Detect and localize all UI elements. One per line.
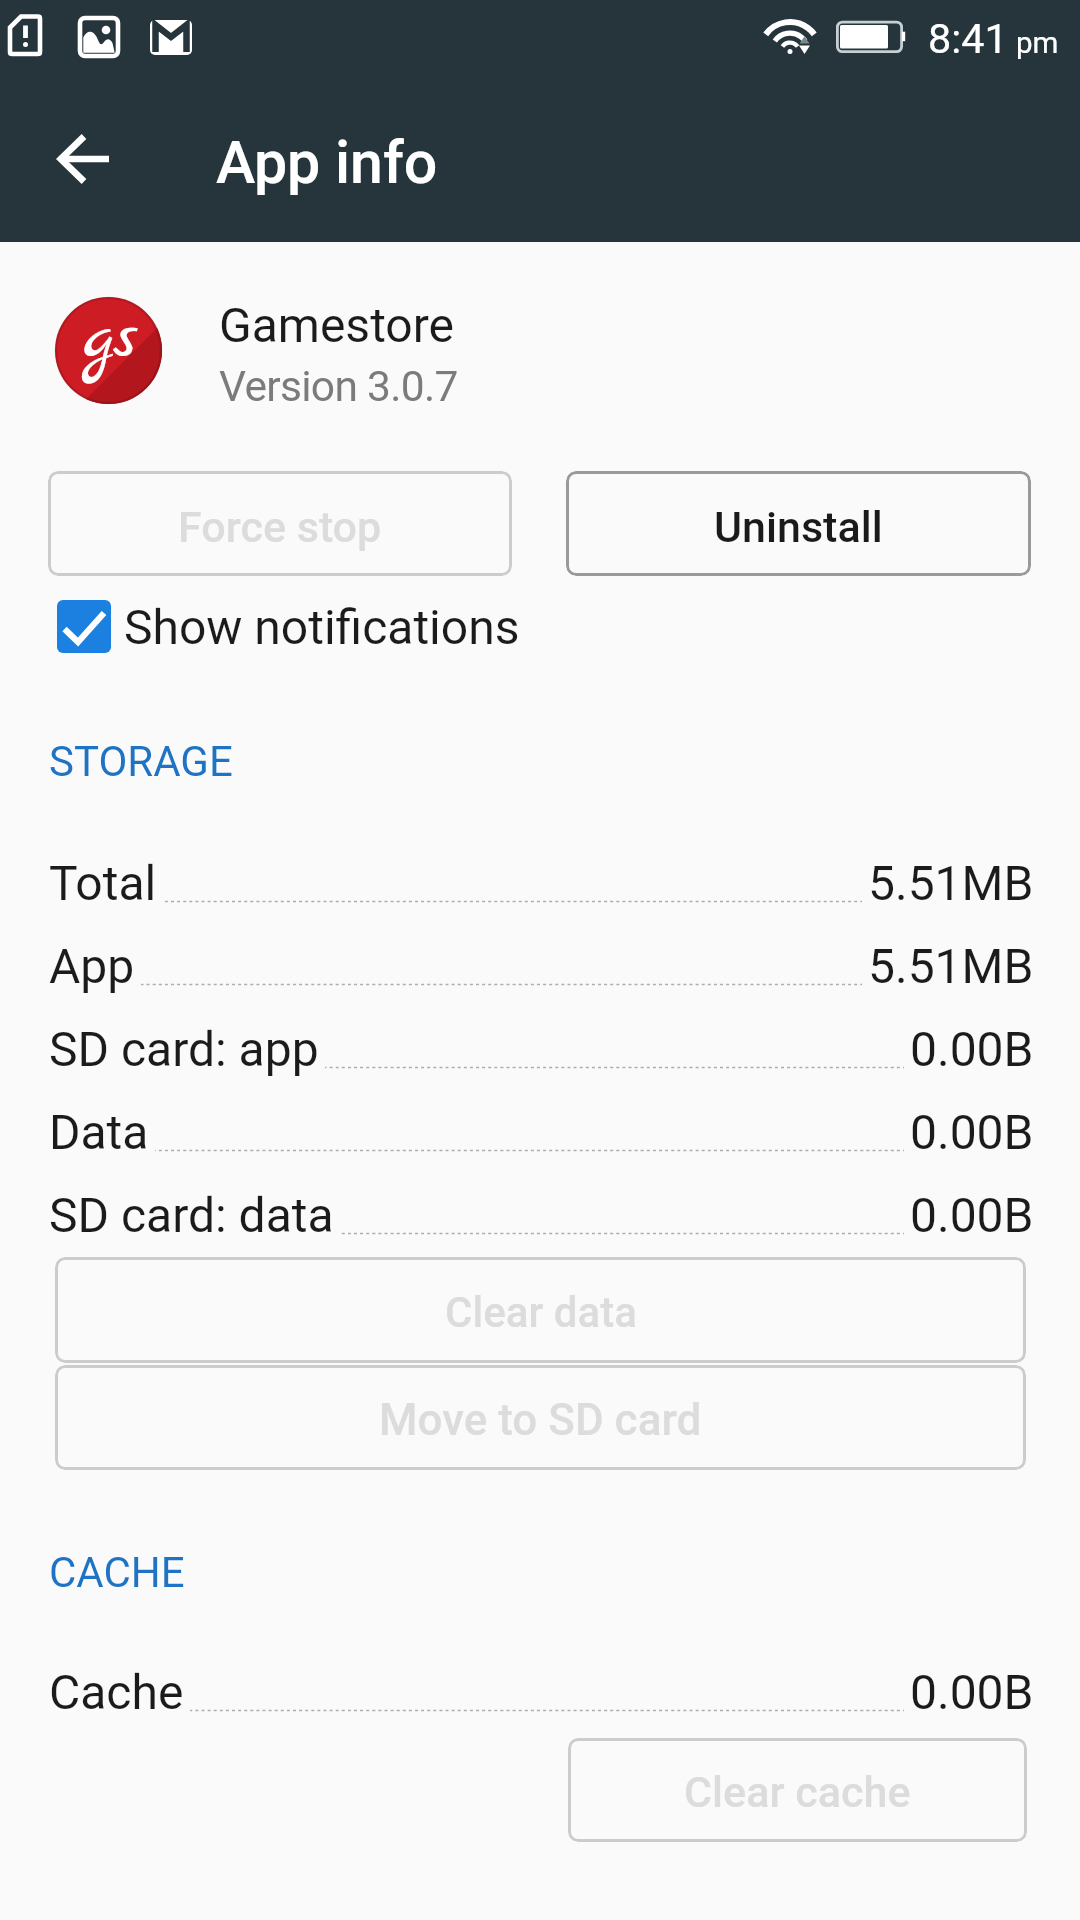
button[interactable]: Uninstall bbox=[566, 471, 1031, 576]
staticText: Uninstall bbox=[714, 502, 883, 552]
staticText: STORAGE bbox=[49, 737, 233, 786]
staticText: Move to SD card bbox=[379, 1394, 702, 1446]
staticText: Cache bbox=[49, 1664, 184, 1720]
button[interactable]: SD card: data bbox=[0, 1176, 1080, 1248]
button[interactable]: Move to SD card bbox=[55, 1365, 1026, 1470]
button[interactable]: Back bbox=[36, 111, 132, 207]
button[interactable]: Clear cache bbox=[568, 1738, 1027, 1842]
staticText: Total bbox=[49, 855, 157, 911]
staticText: Force stop bbox=[178, 502, 382, 552]
staticText: Clear cache bbox=[684, 1767, 911, 1817]
staticText: 0.00B bbox=[910, 1187, 1034, 1243]
button[interactable]: Data bbox=[0, 1093, 1080, 1165]
staticText: SD card: app bbox=[49, 1021, 319, 1077]
staticText: 0.00B bbox=[910, 1021, 1034, 1077]
staticText: 5.51MB bbox=[868, 855, 1034, 911]
staticText: Gamestore bbox=[219, 297, 455, 353]
staticText: Clear data bbox=[445, 1288, 637, 1337]
button[interactable]: SD card: app bbox=[0, 1010, 1080, 1082]
staticText: App info bbox=[216, 128, 438, 197]
button[interactable]: Total bbox=[0, 844, 1080, 916]
button[interactable]: Clear data bbox=[55, 1257, 1026, 1363]
staticText: 0.00B bbox=[910, 1104, 1034, 1160]
staticText: SD card: data bbox=[49, 1187, 334, 1243]
staticText: 0.00B bbox=[910, 1664, 1034, 1720]
staticText: gs bbox=[81, 294, 138, 384]
staticText: 8:41 bbox=[928, 15, 1008, 64]
staticText: 5.51MB bbox=[868, 938, 1034, 994]
button[interactable]: App bbox=[0, 927, 1080, 999]
staticText: CACHE bbox=[49, 1548, 185, 1597]
staticText: App bbox=[49, 938, 135, 994]
staticText: Data bbox=[49, 1104, 149, 1160]
staticText: pm bbox=[1016, 26, 1059, 61]
button[interactable]: Show notifications bbox=[57, 596, 520, 658]
button[interactable]: Force stop bbox=[48, 471, 512, 576]
staticText: Version 3.0.7 bbox=[219, 362, 458, 412]
button[interactable]: Cache bbox=[0, 1653, 1080, 1725]
staticText: Show notifications bbox=[124, 599, 520, 655]
